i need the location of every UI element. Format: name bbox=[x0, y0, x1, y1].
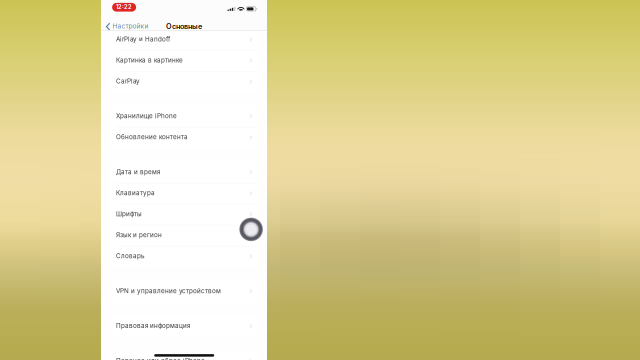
staticText: Хранилище iPhone bbox=[116, 112, 177, 120]
staticText: Настройки bbox=[112, 22, 148, 30]
staticText: Правовая информация bbox=[116, 322, 190, 330]
button[interactable]: VPN и управление устройством bbox=[109, 281, 258, 302]
button[interactable]: AirPlay и Handoff bbox=[109, 29, 258, 50]
button[interactable]: Шрифты bbox=[109, 204, 258, 225]
staticText: VPN и управление устройством bbox=[116, 287, 221, 295]
button[interactable]: CarPlay bbox=[109, 71, 258, 92]
staticText: Шрифты bbox=[116, 210, 142, 218]
staticText: Клавиатура bbox=[116, 189, 155, 197]
button[interactable]: Картинка в картинке bbox=[109, 50, 258, 71]
button[interactable]: Хранилище iPhone bbox=[109, 106, 258, 127]
staticText: Дата и время bbox=[116, 168, 160, 176]
button[interactable]: Правовая информация bbox=[109, 316, 258, 337]
button[interactable]: Словарь bbox=[109, 246, 258, 267]
staticText: Словарь bbox=[116, 252, 145, 260]
button[interactable]: Дата и время bbox=[109, 162, 258, 183]
staticText: AirPlay и Handoff bbox=[116, 35, 170, 43]
staticText: Основные bbox=[166, 22, 202, 31]
button[interactable]: Клавиатура bbox=[109, 183, 258, 204]
button[interactable]: Обновление контента bbox=[109, 127, 258, 148]
button[interactable]: Настройки bbox=[105, 21, 150, 33]
staticText: CarPlay bbox=[116, 77, 140, 85]
staticText: Язык и регион bbox=[116, 231, 162, 239]
button[interactable]: Перенос или сброс iPhone bbox=[109, 351, 258, 360]
staticText: Обновление контента bbox=[116, 133, 188, 141]
staticText: Перенос или сброс iPhone bbox=[116, 357, 205, 360]
staticText: Картинка в картинке bbox=[116, 56, 183, 64]
staticText: 12:22 bbox=[116, 4, 132, 10]
button[interactable]: Язык и регион bbox=[109, 225, 258, 246]
